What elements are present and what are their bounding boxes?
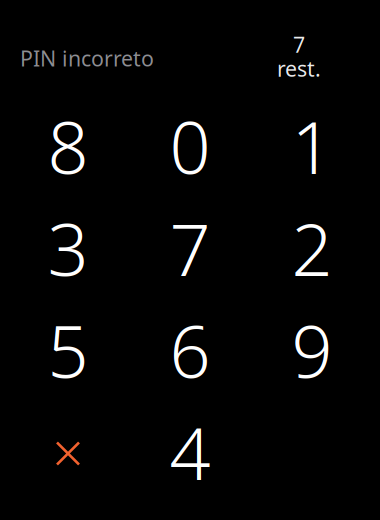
- button[interactable]: 4: [129, 401, 251, 503]
- staticText: 1: [291, 98, 332, 194]
- button[interactable]: 9: [251, 299, 373, 401]
- staticText: 5: [47, 302, 88, 398]
- staticText: 7: [169, 200, 210, 296]
- staticText: 2: [291, 200, 332, 296]
- staticText: rest.: [277, 54, 321, 83]
- staticText: 8: [47, 98, 88, 194]
- staticText: 4: [169, 404, 210, 500]
- button[interactable]: 7: [129, 197, 251, 299]
- button[interactable]: 8: [7, 95, 129, 197]
- staticText: 7: [293, 30, 305, 59]
- staticText: 0: [169, 98, 210, 194]
- button[interactable]: Cancel: [7, 401, 129, 503]
- staticText: PIN incorreto: [20, 44, 154, 72]
- button[interactable]: 1: [251, 95, 373, 197]
- staticText: 9: [291, 302, 332, 398]
- button[interactable]: 0: [129, 95, 251, 197]
- button[interactable]: 5: [7, 299, 129, 401]
- button[interactable]: 2: [251, 197, 373, 299]
- button[interactable]: 6: [129, 299, 251, 401]
- staticText: 6: [169, 302, 210, 398]
- staticText: 3: [47, 200, 88, 296]
- button[interactable]: 3: [7, 197, 129, 299]
